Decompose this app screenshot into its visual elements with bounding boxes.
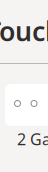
button[interactable]: [5, 84, 48, 126]
staticText: 2 Gang: [17, 128, 48, 150]
staticText: Touch: [0, 13, 48, 49]
